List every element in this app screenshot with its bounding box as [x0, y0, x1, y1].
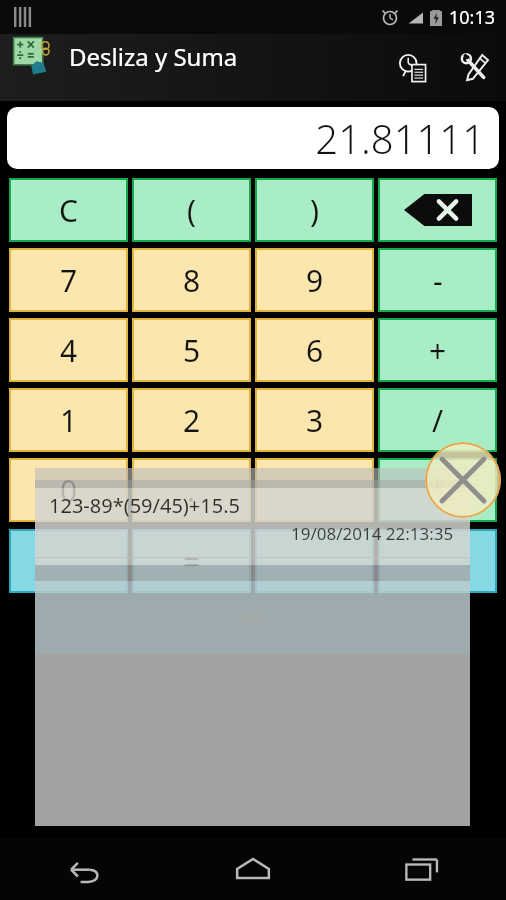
button[interactable]: 3: [255, 388, 374, 452]
staticText: 0: [60, 470, 78, 511]
button[interactable]: /: [378, 388, 497, 452]
button[interactable]: 2: [132, 388, 251, 452]
button[interactable]: Close: [425, 442, 501, 518]
button[interactable]: C: [9, 178, 128, 242]
button[interactable]: =: [132, 529, 251, 593]
button[interactable]: Back: [0, 838, 168, 900]
staticText: 8: [183, 260, 201, 301]
staticText: *: [429, 470, 446, 511]
button[interactable]: [9, 529, 128, 593]
button[interactable]: [255, 529, 374, 593]
staticText: Desliza y Suma: [69, 40, 238, 73]
button[interactable]: 4: [9, 318, 128, 382]
staticText: (: [187, 190, 196, 231]
button[interactable]: 1: [9, 388, 128, 452]
staticText: .: [187, 470, 196, 511]
staticText: 1: [60, 400, 78, 441]
staticText: 123-89*(59/45)+15.5: [49, 492, 240, 519]
button[interactable]: 0: [9, 458, 128, 522]
button[interactable]: .: [132, 458, 251, 522]
staticText: /: [432, 400, 444, 441]
button[interactable]: 7: [9, 248, 128, 312]
button[interactable]: Backspace: [378, 178, 497, 242]
button[interactable]: Recents: [337, 838, 506, 900]
button[interactable]: 9: [255, 248, 374, 312]
button[interactable]: +: [378, 318, 497, 382]
staticText: 2: [183, 400, 201, 441]
staticText: 3: [306, 400, 324, 441]
button[interactable]: Home: [168, 838, 337, 900]
staticText: +: [429, 330, 447, 371]
staticText: ): [310, 190, 319, 231]
staticText: 5: [183, 330, 201, 371]
staticText: =: [183, 541, 201, 582]
staticText: 7: [60, 260, 78, 301]
staticText: 10:13: [449, 5, 496, 30]
staticText: 4: [60, 330, 78, 371]
button[interactable]: 21.81111: [7, 107, 499, 169]
button[interactable]: History: [384, 38, 444, 98]
button[interactable]: [255, 458, 374, 522]
staticText: C: [59, 190, 78, 231]
staticText: 6: [306, 330, 324, 371]
staticText: 21.81111: [315, 111, 485, 165]
button[interactable]: -: [378, 248, 497, 312]
staticText: 19/08/2014 22:13:35: [291, 522, 454, 545]
button[interactable]: *: [378, 458, 497, 522]
button[interactable]: 6: [255, 318, 374, 382]
button[interactable]: 123-89*(59/45)+15.5: [35, 488, 470, 565]
button[interactable]: Settings: [444, 37, 506, 99]
button[interactable]: [378, 529, 497, 593]
staticText: -: [433, 260, 443, 301]
staticText: 9: [306, 260, 324, 301]
button[interactable]: 5: [132, 318, 251, 382]
button[interactable]: ): [255, 178, 374, 242]
button[interactable]: (: [132, 178, 251, 242]
button[interactable]: 8: [132, 248, 251, 312]
